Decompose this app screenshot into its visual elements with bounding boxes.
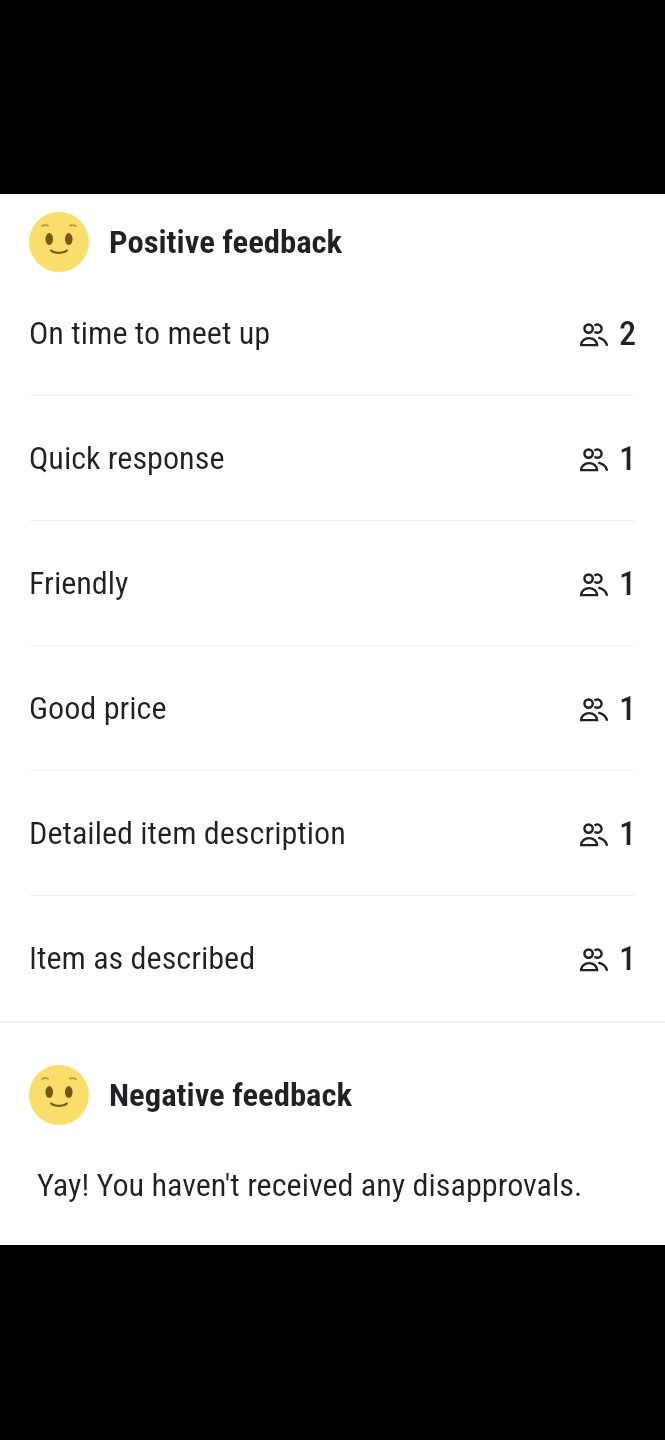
staticText: Detailed item description — [29, 815, 346, 852]
other: People who gave this feedback — [578, 317, 610, 349]
other: People who gave this feedback — [578, 817, 610, 849]
other: Smiling face — [29, 212, 89, 272]
staticText: 1 — [619, 939, 637, 978]
button[interactable]: Quick response — [0, 396, 665, 521]
staticText: 1 — [619, 564, 637, 603]
other: People who gave this feedback — [578, 442, 610, 474]
staticText: Positive feedback — [109, 223, 343, 261]
staticText: 1 — [619, 814, 637, 853]
staticText: Negative feedback — [109, 1076, 353, 1114]
button[interactable]: Friendly — [0, 521, 665, 646]
staticText: Good price — [29, 690, 167, 727]
staticText: 1 — [619, 689, 637, 728]
button[interactable]: On time to meet up — [0, 271, 665, 396]
staticText: Friendly — [29, 565, 129, 602]
other: People who gave this feedback — [578, 942, 610, 974]
staticText: Quick response — [29, 440, 225, 477]
other: People who gave this feedback — [578, 567, 610, 599]
staticText: Yay! You haven't received any disapprova… — [37, 1167, 583, 1204]
button[interactable]: Item as described — [0, 896, 665, 1021]
other: Smiling face — [29, 1065, 89, 1125]
staticText: On time to meet up — [29, 315, 271, 352]
staticText: 1 — [619, 439, 637, 478]
button[interactable]: Detailed item description — [0, 771, 665, 896]
staticText: Item as described — [29, 940, 256, 977]
other: People who gave this feedback — [578, 692, 610, 724]
staticText: 2 — [619, 314, 637, 353]
button[interactable]: Good price — [0, 646, 665, 771]
